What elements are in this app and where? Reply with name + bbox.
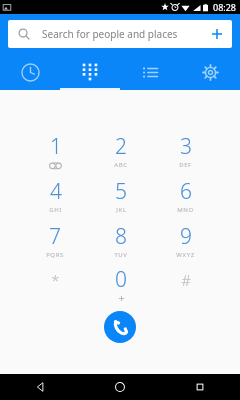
staticText: 1 xyxy=(50,132,62,161)
staticText: 0 xyxy=(115,265,127,294)
button[interactable]: Recents xyxy=(0,54,60,90)
button[interactable]: Key * xyxy=(22,263,88,303)
staticText: TUV xyxy=(114,251,128,259)
staticText: 2 xyxy=(115,132,127,161)
staticText: PQRS xyxy=(46,251,64,259)
button[interactable]: Search for people and places xyxy=(8,20,232,48)
staticText: 4 xyxy=(50,177,62,206)
button[interactable]: Key # xyxy=(153,263,218,303)
button[interactable]: Key 0 xyxy=(88,263,153,303)
staticText: 7 xyxy=(49,222,61,251)
staticText: DEF xyxy=(179,161,192,169)
button[interactable]: Key 3 xyxy=(153,128,218,173)
button[interactable]: Key 9 xyxy=(153,218,218,263)
button[interactable]: Key 8 xyxy=(88,218,153,263)
staticText: 08:28 xyxy=(213,1,237,13)
staticText: JKL xyxy=(116,206,127,214)
staticText: # xyxy=(181,270,191,290)
staticText: GHI xyxy=(49,206,62,214)
staticText: ABC xyxy=(114,161,128,169)
button[interactable]: Call xyxy=(104,311,136,343)
button[interactable]: Dialpad xyxy=(60,54,120,90)
staticText: 8 xyxy=(115,222,127,251)
button[interactable]: Settings xyxy=(180,54,240,90)
button[interactable]: Back xyxy=(0,374,80,400)
staticText: 6 xyxy=(180,177,192,206)
staticText: Search for people and places xyxy=(42,27,202,41)
button[interactable]: Key 2 xyxy=(88,128,153,173)
staticText: MNO xyxy=(177,206,194,214)
staticText: * xyxy=(51,270,60,290)
staticText: 3 xyxy=(180,132,192,161)
button[interactable]: Key 6 xyxy=(153,173,218,218)
button[interactable]: Key 4 xyxy=(22,173,88,218)
button[interactable]: Key 7 xyxy=(22,218,88,263)
button[interactable]: Home xyxy=(80,374,160,400)
button[interactable]: Recents xyxy=(160,374,240,400)
button[interactable]: Key 5 xyxy=(88,173,153,218)
staticText: WXYZ xyxy=(176,251,195,259)
button[interactable]: Contacts xyxy=(120,54,180,90)
button[interactable]: Key 1 xyxy=(22,128,88,173)
staticText: 5 xyxy=(115,177,127,206)
staticText: 9 xyxy=(180,222,192,251)
button[interactable]: Add contact xyxy=(202,20,232,48)
